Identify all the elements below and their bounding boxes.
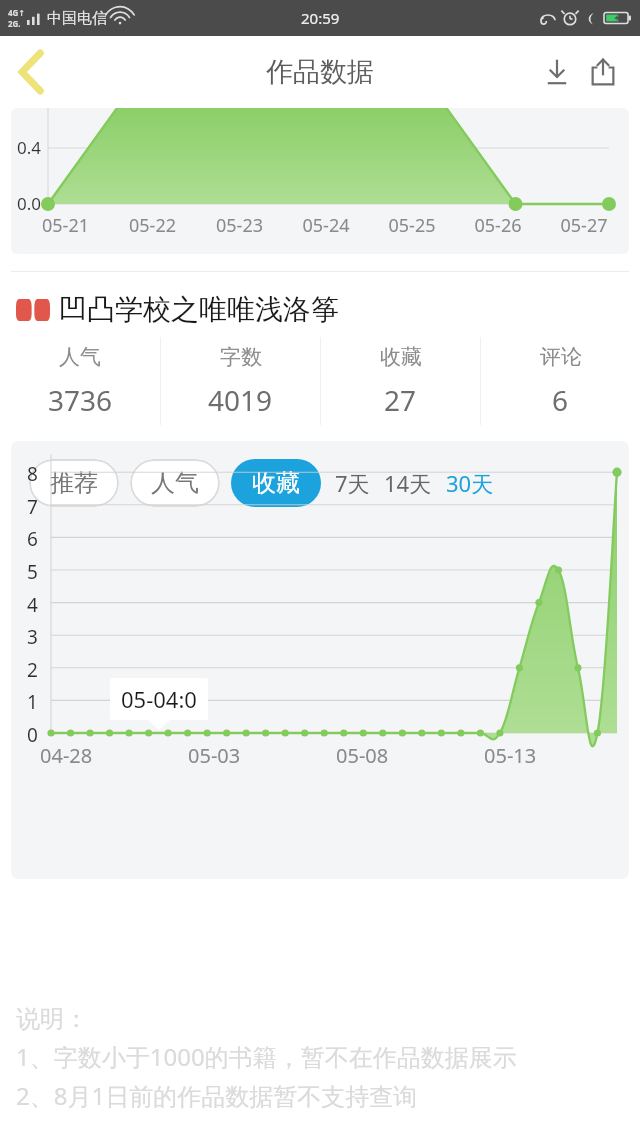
staticText: 说明： (16, 1004, 88, 1034)
button[interactable]: Share (580, 49, 626, 95)
staticText: 1、字数小于1000的书籍，暂不在作品数据展示 (16, 1040, 517, 1073)
staticText: 4019 (208, 381, 273, 419)
staticText: 6 (552, 381, 569, 419)
staticText: 中国电信 (47, 9, 107, 28)
staticText: 0.4 (17, 136, 42, 159)
staticText: 05-23 (196, 213, 283, 238)
button[interactable]: 收藏 (231, 459, 321, 507)
staticText: 凹凸学校之唯唯浅洛筝 (59, 292, 339, 327)
staticText: 2、8月1日前的作品数据暂不支持查询 (16, 1079, 418, 1112)
staticText: 6 (27, 526, 38, 552)
staticText: 3736 (48, 381, 113, 419)
staticText: 05-24 (283, 213, 369, 238)
button[interactable]: 字数 (161, 335, 320, 427)
staticText: 27 (384, 381, 417, 419)
button[interactable]: 14天 (384, 468, 432, 498)
staticText: 2G. (8, 18, 21, 29)
staticText: 05-22 (109, 213, 196, 238)
staticText: 推荐 (50, 468, 98, 498)
button[interactable]: 人气 (0, 335, 160, 427)
button[interactable]: 7天 (335, 468, 370, 498)
button[interactable]: Download (534, 49, 580, 95)
staticText: 评论 (540, 344, 582, 370)
staticText: 字数 (220, 344, 262, 370)
staticText: 05-08 (336, 742, 389, 769)
button[interactable]: 30天 (446, 468, 494, 498)
staticText: 5 (27, 559, 38, 585)
button[interactable]: 推荐 (29, 459, 119, 507)
staticText: 8 (27, 461, 38, 487)
staticText: 0.0 (17, 192, 42, 215)
staticText: 0 (27, 722, 38, 748)
staticText: 人气 (151, 468, 199, 498)
staticText: 4 (27, 592, 38, 618)
button[interactable]: 收藏 (321, 335, 480, 427)
staticText: 2 (27, 657, 38, 683)
staticText: 20:59 (301, 8, 340, 28)
staticText: 7 (27, 494, 38, 520)
staticText: 05-13 (484, 742, 537, 769)
button[interactable]: 人气 (130, 459, 220, 507)
staticText: 收藏 (380, 344, 422, 370)
staticText: 人气 (59, 344, 101, 370)
staticText: 05-03 (188, 742, 241, 769)
staticText: 04-28 (40, 742, 93, 769)
staticText: 05-26 (455, 213, 541, 238)
staticText: 作品数据 (266, 55, 374, 89)
staticText: 4G↑ (8, 7, 26, 18)
staticText: 05-21 (22, 213, 109, 238)
staticText: 05-04:0 (121, 684, 197, 714)
staticText: 1 (27, 689, 38, 715)
button[interactable]: Back (0, 40, 64, 104)
staticText: 05-25 (369, 213, 455, 238)
staticText: 3 (27, 624, 38, 650)
staticText: 05-27 (541, 213, 627, 238)
button[interactable]: 评论 (481, 335, 640, 427)
staticText: 收藏 (252, 468, 300, 498)
